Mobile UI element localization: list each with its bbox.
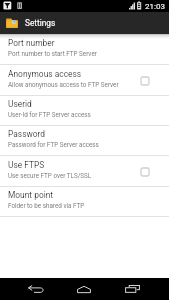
button[interactable]: Toggle Anonymous access	[140, 76, 150, 86]
staticText: Settings	[25, 18, 56, 28]
button[interactable]: Mount point	[0, 187, 169, 217]
staticText: Folder to be shared via FTP	[8, 202, 85, 209]
staticText: Password for FTP Server access	[8, 141, 99, 148]
button[interactable]: Password	[0, 126, 169, 156]
staticText: Anonymous access	[8, 69, 82, 79]
staticText: Allow anonymous access to FTP Server	[8, 81, 119, 88]
staticText: Userid	[8, 99, 32, 109]
button[interactable]: Toggle Use FTPS	[140, 167, 150, 177]
button[interactable]: Anonymous access	[0, 66, 169, 96]
staticText: Use secure FTP over TLS/SSL	[8, 172, 92, 179]
staticText: Port number to start FTP Server	[8, 50, 97, 57]
staticText: Use FTPS	[8, 160, 45, 170]
button[interactable]: Back	[14, 278, 58, 300]
button[interactable]: Use FTPS	[0, 157, 169, 187]
button[interactable]: Home	[62, 278, 106, 300]
button[interactable]: Port number	[0, 35, 169, 65]
button[interactable]: Userid	[0, 96, 169, 126]
staticText: Port number	[8, 38, 55, 48]
staticText: Mount point	[8, 190, 54, 200]
button[interactable]: Recent apps	[110, 278, 154, 300]
staticText: User-Id for FTP Server access	[8, 111, 91, 118]
staticText: 21:03	[145, 2, 165, 11]
staticText: Password	[8, 129, 46, 139]
